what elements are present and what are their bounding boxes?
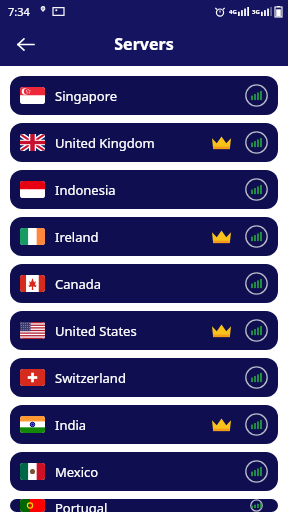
button[interactable]: Singapore — [10, 76, 278, 115]
staticText: 7:34 — [8, 4, 30, 19]
button[interactable]: India — [10, 405, 278, 444]
staticText: Servers — [114, 33, 174, 55]
staticText: Singapore — [55, 87, 118, 105]
staticText: Mexico — [55, 463, 99, 481]
button[interactable]: Canada — [10, 264, 278, 303]
staticText: Indonesia — [55, 181, 116, 199]
button[interactable]: Back — [8, 27, 42, 61]
button[interactable]: Indonesia — [10, 170, 278, 209]
button[interactable]: Portugal — [10, 499, 278, 512]
staticText: United States — [55, 322, 137, 340]
staticText: Portugal — [55, 499, 108, 512]
button[interactable]: Switzerland — [10, 358, 278, 397]
staticText: 3G — [252, 8, 260, 16]
staticText: United Kingdom — [55, 134, 155, 152]
button[interactable]: United States — [10, 311, 278, 350]
staticText: 4G — [229, 8, 237, 16]
staticText: Canada — [55, 275, 102, 293]
staticText: Switzerland — [55, 369, 126, 387]
button[interactable]: Mexico — [10, 452, 278, 491]
button[interactable]: United Kingdom — [10, 123, 278, 162]
button[interactable]: Ireland — [10, 217, 278, 256]
staticText: India — [55, 416, 87, 434]
staticText: Ireland — [55, 228, 99, 246]
